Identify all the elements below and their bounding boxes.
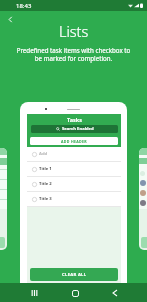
staticText: Predefined task items with checkbox to b…	[0, 46, 147, 62]
button[interactable]: Back	[106, 284, 124, 302]
staticText: Title 3	[39, 196, 52, 202]
button[interactable]: CLEAR ALL	[30, 268, 118, 281]
button[interactable]: Search Enabled	[31, 125, 118, 133]
button[interactable]: Title 3	[27, 192, 121, 207]
staticText: Title 2	[39, 181, 52, 187]
staticText: 18:43	[16, 2, 32, 10]
staticText: CLEAR ALL	[62, 272, 87, 278]
button[interactable]: Add	[27, 147, 121, 162]
staticText: ADD HEADER	[61, 139, 87, 144]
button[interactable]: Recents	[25, 284, 43, 302]
button[interactable]: Title 2	[27, 177, 121, 192]
staticText: Search Enabled	[62, 126, 94, 132]
button[interactable]: Home	[66, 284, 84, 302]
button[interactable]: Title 1	[27, 162, 121, 177]
staticText: Lists	[59, 21, 89, 41]
staticText: Add	[39, 151, 48, 157]
staticText: Tasks	[67, 116, 82, 123]
button[interactable]: ADD HEADER	[30, 137, 118, 145]
staticText: Title 1	[39, 166, 52, 172]
button[interactable]: Back	[3, 12, 17, 26]
